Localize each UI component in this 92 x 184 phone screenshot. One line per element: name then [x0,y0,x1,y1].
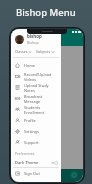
button[interactable]: bishop [11,29,61,46]
staticText: Home [24,63,36,68]
button[interactable]: Subjects [36,48,54,55]
staticText: Students Enrollment [24,105,59,115]
button[interactable]: Profile [11,115,61,126]
button[interactable]: Record/Upload Videos [11,71,61,82]
staticText: Dark Theme [15,160,39,165]
staticText: Record/Upload Videos [24,72,59,82]
button[interactable]: Upload Study Notes [11,82,61,93]
staticText: Upload Study Notes [24,83,59,93]
staticText: Bishop Menu [16,6,76,19]
staticText: Broadcast Message [24,94,59,104]
staticText: Sign Out [24,171,40,176]
button[interactable]: Students Enrollment [11,104,61,115]
staticText: Settings [24,129,39,134]
button[interactable]: Home [11,60,61,71]
staticText: Bishop [27,40,39,45]
button[interactable]: Classes [15,48,31,55]
staticText: Profile [24,118,36,123]
button[interactable]: Broadcast Message [11,93,61,104]
button[interactable]: Dark Theme [11,158,61,167]
staticText: Preferences [15,151,35,156]
staticText: bishop [27,33,42,39]
button[interactable]: Sign Out [11,168,61,179]
staticText: Subjects [36,49,51,54]
button[interactable]: Add [70,171,78,179]
staticText: Classes [15,49,28,54]
button[interactable]: Settings [11,126,61,137]
button[interactable]: Support [11,137,61,148]
staticText: Support [24,140,39,145]
